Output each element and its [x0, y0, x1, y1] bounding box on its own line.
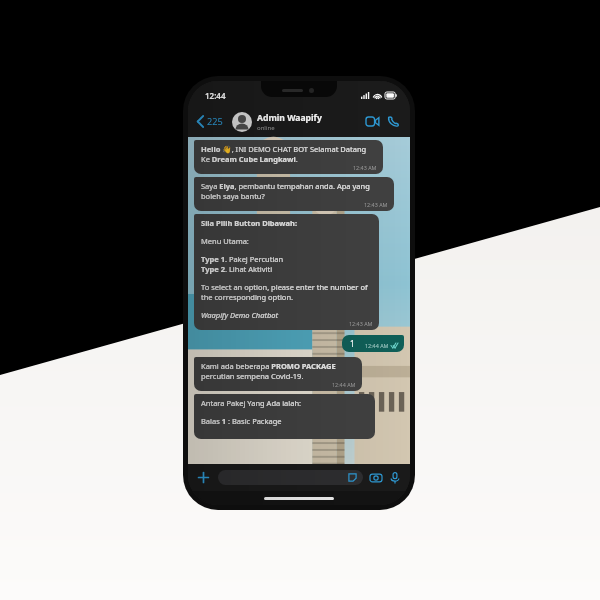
staticText: Kami ada beberapa PROMO PACKAGE percutia…	[201, 361, 356, 381]
button[interactable]: Back to 225 chats	[196, 115, 224, 128]
button[interactable]: Antara Pakej Yang Ada ialah:	[194, 394, 375, 439]
button[interactable]: Kami ada beberapa PROMO PACKAGE percutia…	[194, 357, 362, 391]
button[interactable]	[218, 470, 363, 485]
button[interactable]: Hello 👋, INI DEMO CHAT BOT Selamat Datan…	[194, 140, 383, 174]
staticText: Waapify Demo Chatbot	[201, 310, 278, 320]
staticText: online	[257, 124, 275, 132]
button[interactable]: 1	[342, 335, 404, 352]
staticText: 1	[350, 338, 355, 349]
button[interactable]: Sila Pilih Button Dibawah:	[194, 214, 379, 330]
staticText: Admin Waapify	[257, 112, 322, 124]
staticText: 225	[207, 115, 223, 128]
staticText: Balas 1 : Basic Package	[201, 416, 282, 426]
button[interactable]: Camera	[370, 472, 382, 484]
staticText: 12:43 AM	[364, 201, 388, 208]
staticText: 12:43 AM	[353, 164, 377, 171]
staticText: Saya Elya, pembantu tempahan anda. Apa y…	[201, 181, 388, 201]
button[interactable]: Saya Elya, pembantu tempahan anda. Apa y…	[194, 177, 394, 211]
staticText: To select an option, please enter the nu…	[201, 282, 373, 302]
staticText: Hello 👋, INI DEMO CHAT BOT Selamat Datan…	[201, 144, 377, 164]
staticText: 12:44	[205, 90, 226, 101]
staticText: Type 1. Pakej Percutian	[201, 254, 284, 264]
staticText: 12:44 AM	[365, 342, 389, 349]
button[interactable]: Video call	[363, 114, 382, 129]
button[interactable]: Voice message	[389, 472, 401, 484]
button[interactable]: Attach	[197, 471, 210, 484]
staticText: Menu Utama:	[201, 236, 249, 246]
staticText: Sila Pilih Button Dibawah:	[201, 218, 297, 228]
button[interactable]: Voice call	[385, 113, 402, 130]
staticText: Type 2. Lihat Aktiviti	[201, 264, 273, 274]
staticText: 12:43 AM	[349, 320, 373, 327]
staticText: 12:44 AM	[332, 381, 356, 388]
staticText: Antara Pakej Yang Ada ialah:	[201, 398, 302, 408]
